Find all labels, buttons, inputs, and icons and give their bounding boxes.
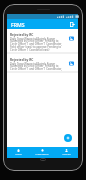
button[interactable]: Logout	[67, 19, 77, 29]
button[interactable]: Rejected by RC	[7, 54, 78, 71]
staticText: Daily Travel Report of Rajesh Kumar Subm…	[10, 62, 65, 71]
staticText: Home	[15, 153, 22, 156]
button[interactable]: Attachment	[66, 58, 76, 68]
button[interactable]: Account	[54, 147, 78, 156]
staticText: Notifications	[35, 153, 49, 156]
button[interactable]: Rejected by RC	[7, 29, 78, 52]
button[interactable]: Home	[7, 147, 30, 156]
staticText: Rejected by RC	[10, 33, 34, 37]
staticText: Rejected by RC	[10, 58, 34, 62]
button[interactable]: Add	[64, 134, 72, 142]
button[interactable]: Attachment	[66, 33, 76, 43]
staticText: Daily Travel Report of Rajesh Kumar Subm…	[10, 37, 65, 52]
staticText: Account	[62, 153, 71, 156]
button[interactable]: Notifications	[30, 147, 54, 156]
staticText: FRMS	[11, 21, 25, 28]
